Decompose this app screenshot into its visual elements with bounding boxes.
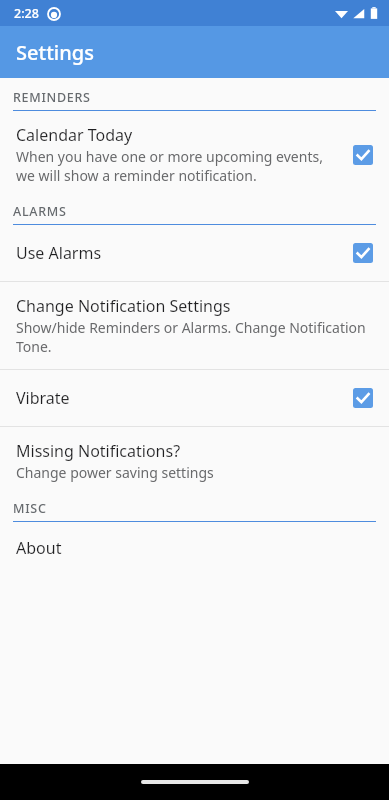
button[interactable]: Toggle setting — [353, 145, 373, 165]
staticText: MISC — [13, 500, 47, 517]
button[interactable]: Missing Notifications? — [0, 427, 389, 495]
staticText: About — [16, 537, 62, 559]
staticText: Vibrate — [16, 387, 70, 409]
staticText: Change Notification Settings — [16, 295, 231, 317]
button[interactable]: Use Alarms — [0, 225, 389, 281]
button[interactable]: Toggle setting — [353, 243, 373, 263]
button[interactable]: About — [0, 522, 389, 574]
staticText: ALARMS — [13, 203, 67, 220]
button[interactable]: Calendar Today — [0, 111, 389, 198]
staticText: Change power saving settings — [16, 463, 214, 482]
staticText: Calendar Today — [16, 124, 133, 146]
staticText: Settings — [16, 39, 94, 66]
button[interactable]: Toggle setting — [353, 388, 373, 408]
staticText: 2:28 — [14, 5, 39, 22]
staticText: Missing Notifications? — [16, 440, 181, 462]
staticText: REMINDERS — [13, 89, 91, 106]
button[interactable]: Vibrate — [0, 370, 389, 426]
staticText: Show/hide Reminders or Alarms. Change No… — [16, 318, 373, 356]
staticText: Use Alarms — [16, 242, 102, 264]
staticText: When you have one or more upcoming event… — [16, 147, 341, 185]
button[interactable]: Change Notification Settings — [0, 282, 389, 369]
